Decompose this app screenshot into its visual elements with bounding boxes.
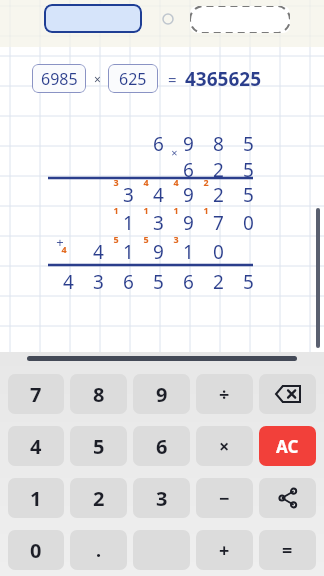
staticText: 4365625 — [185, 66, 262, 92]
staticText: + — [56, 233, 64, 251]
staticText: 1 — [123, 210, 134, 236]
button[interactable]: . — [70, 530, 127, 570]
staticText: 3 — [156, 485, 168, 512]
staticText: 5 — [243, 269, 254, 295]
button[interactable]: − — [196, 478, 253, 518]
staticText: 6 — [123, 269, 134, 295]
staticText: 7 — [30, 381, 42, 408]
staticText: 3 — [123, 182, 134, 208]
staticText: 5 — [243, 131, 254, 157]
staticText: 2 — [93, 485, 105, 512]
staticText: 3 — [153, 210, 164, 236]
staticText: × — [171, 145, 178, 160]
staticText: 1 — [123, 239, 134, 265]
button[interactable]: 4 — [8, 426, 64, 466]
staticText: 3 — [173, 233, 179, 245]
staticText: = — [282, 538, 293, 563]
staticText: 4 — [143, 176, 149, 188]
staticText: AC — [276, 435, 299, 458]
button[interactable]: 3 — [133, 478, 190, 518]
staticText: 1 — [203, 204, 209, 216]
staticText: 1 — [173, 204, 179, 216]
button[interactable]: Backspace — [259, 374, 316, 414]
button[interactable]: = — [259, 530, 316, 570]
button[interactable]: 5 — [70, 426, 127, 466]
staticText: 2 — [213, 182, 224, 208]
staticText: 1 — [143, 204, 149, 216]
staticText: 2 — [213, 269, 224, 295]
staticText: 9 — [183, 210, 194, 236]
staticText: 7 — [213, 210, 224, 236]
staticText: 0 — [243, 210, 254, 236]
staticText: 4 — [63, 269, 74, 295]
staticText: 6 — [156, 433, 168, 460]
staticText: 3 — [93, 269, 104, 295]
staticText: 5 — [243, 182, 254, 208]
button[interactable]: Share — [259, 478, 316, 518]
staticText: 9 — [183, 131, 194, 157]
staticText: ÷ — [219, 382, 230, 407]
button[interactable]: Current tab — [44, 4, 142, 33]
button[interactable]: 0 — [8, 530, 64, 570]
button[interactable]: 6985 — [32, 64, 86, 93]
button[interactable]: 625 — [108, 64, 158, 93]
staticText: 8 — [213, 131, 224, 157]
staticText: 4 — [30, 433, 42, 460]
staticText: 1 — [183, 239, 194, 265]
staticText: 4 — [173, 176, 179, 188]
staticText: 625 — [119, 68, 147, 90]
staticText: 5 — [153, 269, 164, 295]
button[interactable]: AC — [259, 426, 316, 466]
staticText: 5 — [143, 233, 149, 245]
staticText: 5 — [113, 233, 119, 245]
staticText: 8 — [93, 381, 105, 408]
staticText: 6 — [183, 157, 194, 183]
staticText: 6 — [153, 131, 164, 157]
staticText: 0 — [30, 537, 42, 564]
staticText: 1 — [30, 485, 42, 512]
staticText: 9 — [156, 381, 168, 408]
staticText: × — [94, 71, 101, 87]
staticText: − — [219, 486, 230, 511]
button[interactable]: × — [196, 426, 253, 466]
staticText: 9 — [183, 182, 194, 208]
staticText: × — [219, 434, 230, 459]
other: Tab dot — [162, 13, 174, 25]
button[interactable]: 2 — [70, 478, 127, 518]
staticText: 6985 — [41, 68, 78, 90]
button[interactable]: Resize keypad — [27, 356, 297, 361]
button[interactable]: 8 — [70, 374, 127, 414]
staticText: 2 — [213, 157, 224, 183]
staticText: 9 — [153, 239, 164, 265]
staticText: = — [168, 69, 177, 89]
button[interactable]: ÷ — [196, 374, 253, 414]
staticText: 1 — [113, 204, 119, 216]
staticText: 5 — [243, 157, 254, 183]
button[interactable]: 7 — [8, 374, 64, 414]
staticText: 4 — [153, 182, 164, 208]
staticText: + — [219, 538, 230, 563]
staticText: . — [96, 538, 102, 563]
staticText: 4 — [61, 243, 67, 255]
staticText: 0 — [213, 239, 224, 265]
button[interactable]: + — [196, 530, 253, 570]
staticText: 4 — [93, 239, 104, 265]
staticText: 5 — [93, 433, 105, 460]
button[interactable]: 6 — [133, 426, 190, 466]
staticText: 2 — [203, 176, 209, 188]
staticText: 6 — [183, 269, 194, 295]
staticText: 3 — [113, 176, 119, 188]
button[interactable]: 1 — [8, 478, 64, 518]
button[interactable]: New tab — [190, 6, 290, 33]
button[interactable]: 9 — [133, 374, 190, 414]
